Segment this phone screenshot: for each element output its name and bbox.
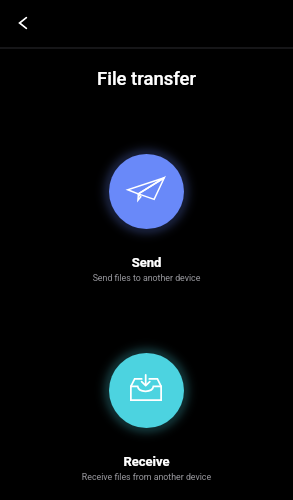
button[interactable]: Send bbox=[109, 154, 184, 229]
staticText: Receive files from another device bbox=[0, 472, 293, 482]
staticText: Send bbox=[0, 255, 293, 270]
staticText: Receive bbox=[0, 454, 293, 469]
staticText: Send files to another device bbox=[0, 273, 293, 283]
button[interactable]: Receive bbox=[109, 353, 184, 428]
button[interactable]: Back bbox=[7, 7, 39, 39]
staticText: File transfer bbox=[0, 68, 293, 90]
